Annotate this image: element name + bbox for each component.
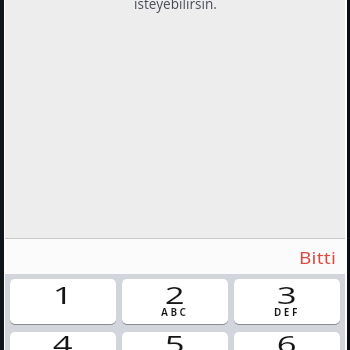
button[interactable]: 3 [234,279,340,324]
button[interactable]: 5 [122,332,228,350]
staticText: 2 [165,279,185,311]
staticText: isteyebilirsin. [134,0,217,13]
staticText: Bitti [299,246,337,269]
staticText: 4 [53,332,73,350]
staticText: 3 [277,279,297,311]
button[interactable]: 6 [234,332,340,350]
button[interactable]: Bitti [301,245,345,268]
staticText: 6 [277,332,297,350]
button[interactable]: 2 [122,279,228,324]
staticText: 5 [165,332,185,350]
button[interactable]: 1 [10,279,116,324]
button[interactable]: 4 [10,332,116,350]
staticText: ABC [161,305,189,317]
staticText: 1 [53,279,73,311]
staticText: DEF [274,305,300,317]
